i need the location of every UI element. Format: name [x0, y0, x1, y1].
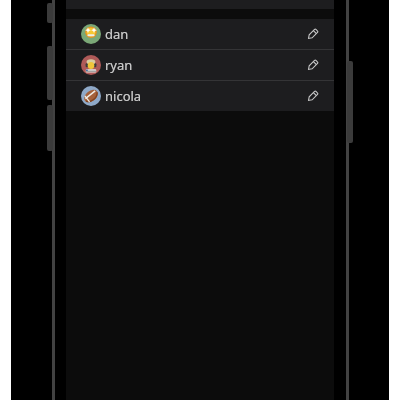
button[interactable]: nicola [66, 81, 334, 111]
staticText: dan [105, 25, 129, 43]
button[interactable]: ryan [66, 50, 334, 80]
button[interactable] [301, 85, 323, 107]
staticText: ryan [105, 56, 133, 74]
button[interactable]: dan [66, 19, 334, 49]
button[interactable] [301, 23, 323, 45]
staticText: nicola [105, 87, 142, 105]
button[interactable] [301, 54, 323, 76]
